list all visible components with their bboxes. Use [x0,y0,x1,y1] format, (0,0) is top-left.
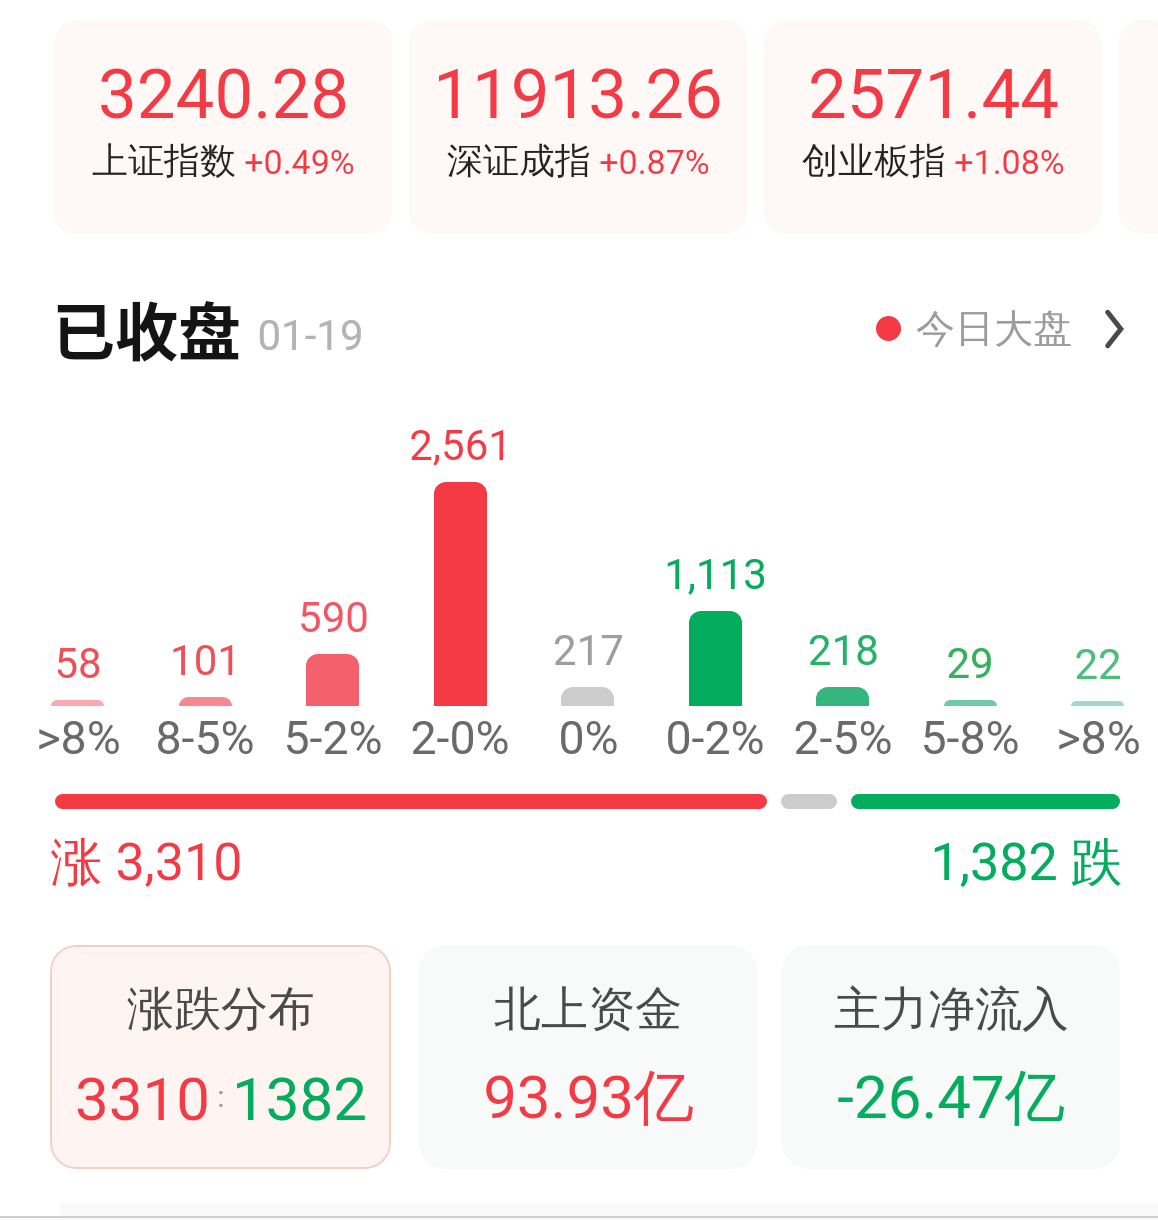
staticText: 上证指数 [92,138,236,183]
button[interactable]: 11913.26 [409,20,747,234]
button[interactable]: 今日大盘 [876,304,1123,353]
button[interactable]: 2571.44 [764,20,1102,234]
staticText: 3310 [75,1064,210,1134]
staticText: 涨 3,310 [50,830,243,896]
button[interactable]: 3240.28 [54,20,392,234]
staticText: 深证成指 [447,138,591,183]
staticText: 1,113 [664,550,767,599]
staticText: 0-2% [665,711,765,765]
button[interactable] [14,420,142,760]
staticText: 11913.26 [433,54,723,135]
staticText: 217 [553,626,624,675]
staticText: 创业板指 [802,138,946,183]
button[interactable] [1034,420,1158,760]
button[interactable] [141,420,269,760]
staticText: 5-2% [283,711,383,765]
button[interactable] [779,420,907,760]
staticText: 58 [54,639,102,688]
staticText: 2,561 [409,421,512,470]
staticText: 2-0% [410,711,510,765]
staticText: >8% [1056,711,1141,765]
staticText: 今日大盘 [916,304,1072,353]
button[interactable]: 北上资金 [419,945,757,1169]
staticText: 2-5% [793,711,893,765]
staticText: 涨跌分布 [127,980,315,1039]
button[interactable]: 主力净流入 [782,945,1120,1169]
button[interactable] [269,420,397,760]
staticText: 2571.44 [808,54,1059,135]
staticText: >8% [36,711,121,765]
staticText: 590 [298,593,369,642]
staticText: 22 [1074,640,1122,689]
staticText: 8-5% [155,711,255,765]
button[interactable] [396,420,524,760]
staticText: : [217,1079,225,1114]
staticText: +1.08% [954,142,1065,182]
staticText: -26.47亿 [837,1060,1065,1136]
staticText: 已收盘 [52,282,241,373]
staticText: +0.49% [244,142,355,182]
button[interactable] [651,420,779,760]
staticText: 218 [808,626,879,675]
button[interactable] [524,420,652,760]
button[interactable] [907,420,1035,760]
other: 查看今日大盘 [1105,310,1123,348]
staticText: 01-19 [257,311,364,360]
staticText: 1382 [232,1064,367,1134]
staticText: 北上资金 [494,980,682,1039]
staticText: 3240.28 [98,54,349,135]
staticText: 主力净流入 [834,980,1069,1039]
staticText: 5-8% [920,711,1020,765]
staticText: 0% [558,711,619,765]
staticText: 93.93亿 [483,1060,694,1136]
staticText: 1,382 跌 [930,830,1123,896]
staticText: +0.87% [599,142,710,182]
staticText: 29 [946,639,994,688]
staticText: 101 [170,636,241,685]
button[interactable]: 涨跌分布 [50,945,391,1169]
